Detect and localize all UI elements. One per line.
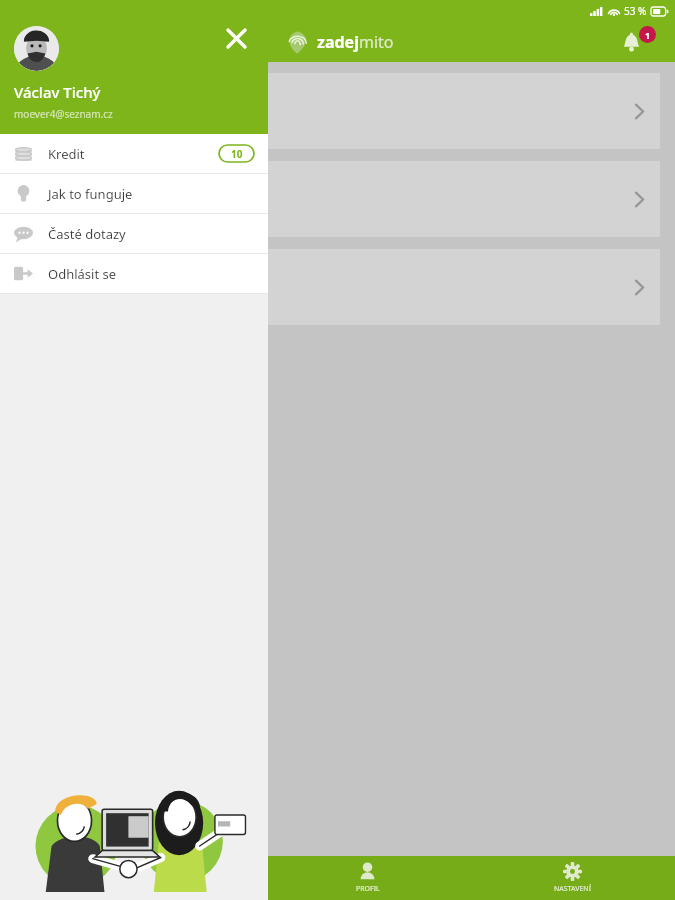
button[interactable]: Close menu <box>220 22 252 54</box>
button[interactable] <box>0 161 660 237</box>
staticText: Časté dotazy <box>48 225 126 243</box>
button[interactable] <box>14 26 59 71</box>
button[interactable]: NASTAVENÍ <box>470 856 675 900</box>
button[interactable]: PROFIL <box>265 856 470 900</box>
button[interactable]: Časté dotazy <box>0 214 268 253</box>
staticText: 10 <box>231 147 243 161</box>
button[interactable]: Jak to funguje <box>0 174 268 213</box>
button[interactable]: Kredit <box>0 134 268 173</box>
staticText: PROFIL <box>356 884 380 894</box>
button[interactable]: Odhlásit se <box>0 254 268 293</box>
staticText: Odhlásit se <box>48 265 117 283</box>
button[interactable]: Notifications <box>616 27 646 57</box>
staticText: 53 % <box>624 4 647 18</box>
staticText: mito <box>359 31 394 53</box>
staticText: Kredit <box>48 145 85 163</box>
staticText: zadej <box>317 31 359 53</box>
staticText: Václav Tichý <box>14 82 101 102</box>
staticText: 1 <box>645 29 651 41</box>
staticText: NASTAVENÍ <box>554 884 592 894</box>
button[interactable] <box>0 249 660 325</box>
staticText: Jak to funguje <box>48 185 133 203</box>
staticText: moever4@seznam.cz <box>14 107 113 121</box>
button[interactable] <box>0 73 660 149</box>
